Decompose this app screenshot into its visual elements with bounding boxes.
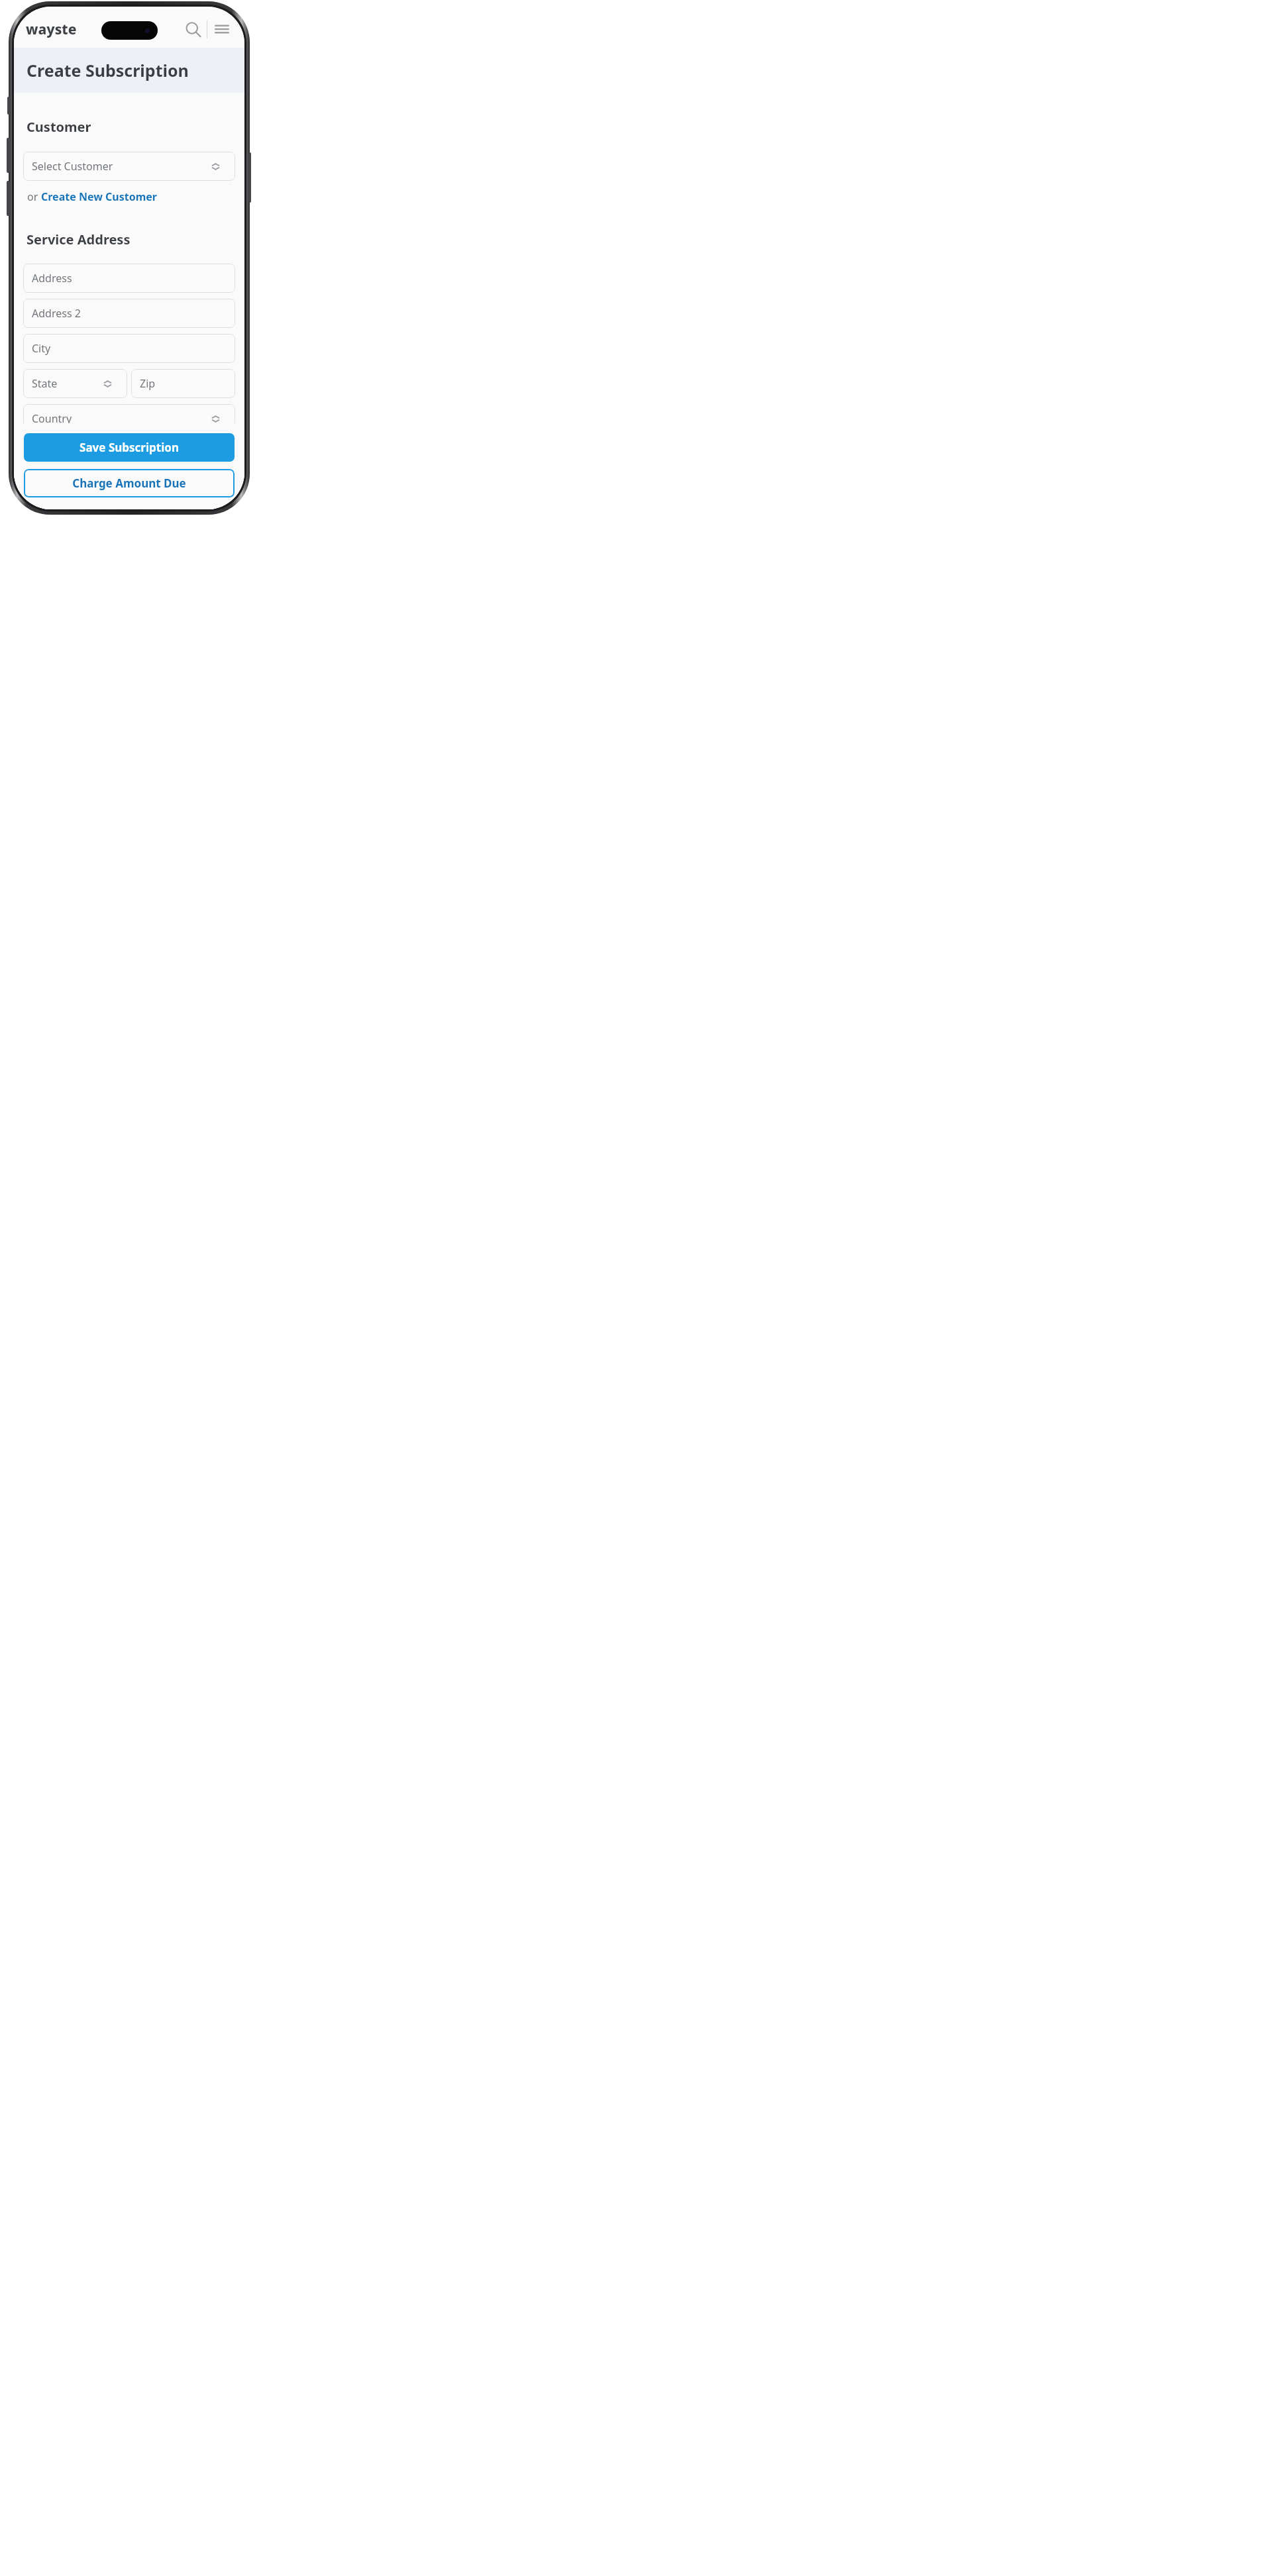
button[interactable]: Menu [207,15,237,44]
staticText: Customer [26,118,91,136]
staticText: Address 2 [32,306,81,321]
staticText: City [32,341,51,356]
staticText: Zip [140,376,156,391]
staticText: Select Customer [32,159,113,174]
button[interactable]: Country [23,404,235,433]
button[interactable]: Charge Amount Due [24,469,235,497]
button[interactable]: or [27,189,157,204]
staticText: MASPETH [161,450,183,457]
staticText: Charge Amount Due [72,476,186,491]
staticText: Create New Customer [41,189,157,204]
button[interactable]: Zip [131,369,235,398]
button[interactable]: Map [23,440,235,509]
staticText: Address [32,271,72,285]
staticText: State [32,376,58,391]
button[interactable]: Address [23,264,235,293]
staticText: Service Address [26,231,131,248]
staticText: Country [32,411,72,426]
button[interactable]: Select Customer [23,152,235,181]
staticText: Save Subscription [79,440,179,455]
button[interactable]: Save Subscription [24,433,235,462]
staticText: or [27,189,41,204]
button[interactable]: Address 2 [23,299,235,328]
staticText: 278 [129,467,136,472]
button[interactable]: Search [179,15,207,43]
staticText: Create Subscription [26,59,189,81]
button[interactable]: City [23,334,235,363]
staticText: wayste [26,20,77,39]
button[interactable]: State [23,369,127,398]
